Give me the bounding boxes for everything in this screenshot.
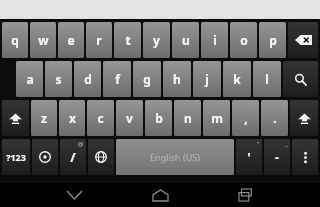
button[interactable]: ?123 (2, 139, 30, 175)
button[interactable]: e (58, 22, 84, 58)
button[interactable]: Delete (288, 22, 318, 58)
button[interactable]: Shift (290, 100, 318, 136)
staticText: g (143, 71, 151, 87)
staticText: d (84, 71, 92, 87)
staticText: x (69, 110, 76, 126)
staticText: . (273, 110, 277, 126)
staticText: t (125, 32, 131, 48)
button[interactable]: Recent apps (229, 183, 263, 207)
button[interactable]: q (2, 22, 28, 58)
staticText: k (233, 71, 241, 87)
staticText: s (55, 71, 62, 87)
staticText: " (257, 140, 260, 148)
button[interactable]: l (253, 61, 281, 97)
button[interactable]: x (59, 100, 85, 136)
button[interactable]: d (74, 61, 101, 97)
button[interactable]: c (87, 100, 114, 136)
button[interactable]: u (172, 22, 199, 58)
button[interactable]: h (163, 61, 191, 97)
staticText: y (153, 32, 160, 48)
button[interactable]: b (145, 100, 172, 136)
staticText: English (US) (150, 151, 200, 163)
staticText: ? (283, 101, 286, 109)
staticText: ! (255, 101, 257, 109)
button[interactable]: s (45, 61, 72, 97)
button[interactable]: t (114, 22, 141, 58)
staticText: o (240, 32, 248, 48)
button[interactable]: m (203, 100, 230, 136)
staticText: v (126, 110, 133, 126)
staticText: , (244, 110, 248, 126)
staticText: p (269, 32, 277, 48)
staticText: c (97, 110, 104, 126)
staticText: q (11, 32, 19, 48)
staticText: / (70, 148, 76, 166)
button[interactable]: i (201, 22, 228, 58)
button[interactable]: n (174, 100, 201, 136)
button[interactable]: ? (261, 100, 288, 136)
staticText: - (275, 149, 279, 165)
button[interactable]: @ (60, 139, 86, 175)
button[interactable]: More options (292, 139, 318, 175)
button[interactable]: o (230, 22, 257, 58)
staticText: b (155, 110, 163, 126)
staticText: w (38, 32, 49, 48)
button[interactable]: a (16, 61, 43, 97)
staticText: z (41, 110, 47, 126)
button[interactable]: Space (116, 139, 234, 175)
button[interactable]: Emoji (32, 139, 58, 175)
staticText: u (182, 32, 190, 48)
button[interactable]: g (133, 61, 161, 97)
button[interactable]: w (30, 22, 56, 58)
button[interactable]: Search (283, 61, 318, 97)
staticText: ' (247, 149, 251, 165)
button[interactable]: Home (143, 183, 177, 207)
staticText: m (211, 110, 223, 126)
button[interactable]: y (143, 22, 170, 58)
button[interactable]: r (86, 22, 112, 58)
staticText: h (173, 71, 181, 87)
staticText: ?123 (6, 151, 26, 163)
staticText: j (205, 71, 209, 87)
button[interactable]: k (223, 61, 251, 97)
button[interactable]: p (259, 22, 286, 58)
button[interactable]: ! (232, 100, 259, 136)
button[interactable]: " (236, 139, 262, 175)
button[interactable]: Back (57, 183, 91, 207)
button[interactable]: v (116, 100, 143, 136)
staticText: e (67, 32, 75, 48)
staticText: n (184, 110, 192, 126)
staticText: a (26, 71, 34, 87)
staticText: l (265, 71, 269, 87)
staticText: r (96, 32, 102, 48)
button[interactable]: _ (264, 139, 290, 175)
button[interactable]: z (31, 100, 57, 136)
staticText: _ (285, 140, 288, 148)
button[interactable]: j (193, 61, 221, 97)
button[interactable]: Change language (88, 139, 114, 175)
staticText: i (213, 32, 217, 48)
button[interactable]: Shift (2, 100, 29, 136)
button[interactable]: f (103, 61, 131, 97)
staticText: @ (78, 140, 84, 148)
staticText: f (115, 71, 120, 87)
